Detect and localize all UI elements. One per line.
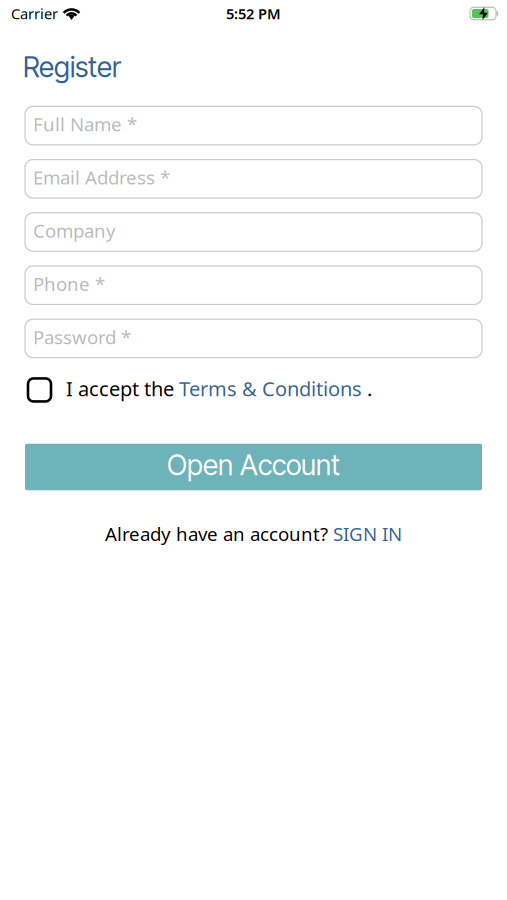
staticText: Company [33, 218, 116, 243]
textField[interactable]: Full Name * [25, 111, 482, 141]
textField[interactable]: Company [25, 217, 482, 247]
button[interactable]: Terms & Conditions [179, 375, 362, 402]
staticText: 5:52 PM [226, 4, 281, 23]
staticText: SIGN IN [333, 521, 402, 546]
staticText: Already have an account? [105, 521, 333, 546]
staticText: Full Name * [25, 111, 151, 141]
staticText: Email Address * [33, 165, 170, 190]
staticText: Open Account [167, 448, 340, 482]
staticText: I accept the [66, 375, 179, 402]
staticText: Phone * [33, 271, 105, 296]
staticText: Terms & Conditions [179, 375, 362, 402]
staticText: Company [25, 217, 127, 247]
staticText: Full Name * [33, 112, 137, 136]
staticText: Email Address * [25, 164, 194, 194]
textField[interactable]: Phone * [25, 270, 482, 300]
staticText: Password * [33, 324, 131, 349]
button[interactable]: I accept the Terms & Conditions [28, 378, 51, 401]
staticText: . [362, 375, 372, 402]
staticText: Register [23, 50, 121, 84]
staticText: Carrier [11, 4, 58, 23]
button[interactable]: Open Account [25, 444, 482, 490]
textField[interactable]: Email Address * [25, 164, 482, 194]
button[interactable]: SIGN IN [333, 521, 402, 546]
staticText: Password * [25, 323, 147, 353]
secureTextField[interactable]: Password * [25, 323, 482, 353]
staticText: Phone * [25, 270, 112, 300]
